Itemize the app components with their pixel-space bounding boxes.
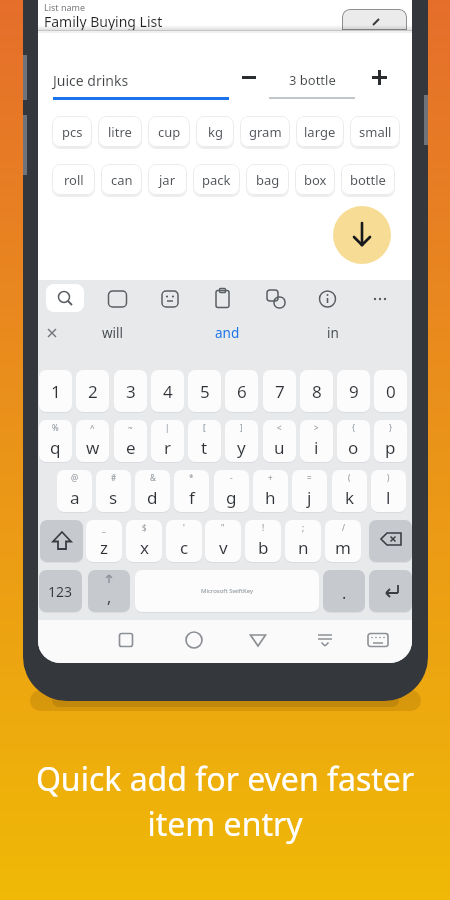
- button[interactable]: [102, 284, 132, 314]
- button[interactable]: [207, 284, 237, 314]
- button[interactable]: >: [300, 420, 333, 462]
- staticText: #: [111, 472, 117, 483]
- button[interactable]: 0: [374, 370, 407, 412]
- button[interactable]: {: [337, 420, 370, 462]
- button[interactable]: [342, 9, 407, 30]
- staticText: }: [389, 422, 393, 433]
- button[interactable]: _: [86, 520, 122, 562]
- button[interactable]: in: [293, 322, 373, 344]
- button[interactable]: [365, 284, 395, 314]
- button[interactable]: bag: [246, 164, 289, 195]
- staticText: 0: [386, 380, 396, 403]
- button[interactable]: }: [374, 420, 407, 462]
- staticText: k: [345, 486, 355, 509]
- button[interactable]: $: [126, 520, 162, 562]
- button[interactable]: ;: [285, 520, 321, 562]
- button[interactable]: <: [263, 420, 296, 462]
- button[interactable]: [365, 627, 391, 653]
- button[interactable]: [46, 284, 84, 312]
- button[interactable]: 7: [263, 370, 296, 412]
- button[interactable]: &: [135, 470, 170, 512]
- button[interactable]: jar: [148, 164, 187, 195]
- staticText: ': [183, 522, 185, 533]
- button[interactable]: 1: [39, 370, 72, 412]
- button[interactable]: [40, 520, 83, 562]
- button[interactable]: .: [323, 570, 365, 612]
- button[interactable]: litre: [98, 116, 142, 147]
- button[interactable]: Microsoft SwiftKey: [135, 570, 319, 612]
- button[interactable]: !: [245, 520, 281, 562]
- staticText: gram: [249, 123, 282, 141]
- staticText: %: [52, 422, 59, 433]
- button[interactable]: 8: [300, 370, 333, 412]
- button[interactable]: -: [214, 470, 249, 512]
- button[interactable]: [245, 627, 271, 653]
- button[interactable]: @: [57, 470, 92, 512]
- staticText: small: [359, 123, 392, 141]
- staticText: Microsoft SwiftKey: [201, 587, 253, 595]
- staticText: Juice drinks: [53, 71, 129, 90]
- staticText: u: [274, 436, 285, 459]
- button[interactable]: [312, 627, 338, 653]
- button[interactable]: /: [325, 520, 361, 562]
- button[interactable]: *: [174, 470, 209, 512]
- button[interactable]: ^: [76, 420, 109, 462]
- button[interactable]: cup: [148, 116, 190, 147]
- button[interactable]: small: [350, 116, 400, 147]
- button[interactable]: ~: [114, 420, 147, 462]
- button[interactable]: gram: [240, 116, 290, 147]
- button[interactable]: [369, 520, 412, 562]
- staticText: &: [150, 472, 156, 483]
- staticText: Family Buying List: [44, 12, 163, 31]
- button[interactable]: and: [187, 322, 267, 344]
- button[interactable]: can: [101, 164, 142, 195]
- button[interactable]: 123: [39, 570, 82, 612]
- button[interactable]: [260, 284, 290, 314]
- button[interactable]: 4: [151, 370, 184, 412]
- button[interactable]: 3: [114, 370, 147, 412]
- button[interactable]: 9: [337, 370, 370, 412]
- button[interactable]: #: [96, 470, 131, 512]
- staticText: 7: [275, 380, 285, 403]
- button[interactable]: will: [73, 322, 153, 344]
- button[interactable]: [155, 284, 185, 314]
- button[interactable]: [113, 627, 139, 653]
- button[interactable]: ]: [225, 420, 258, 462]
- button[interactable]: ": [205, 520, 241, 562]
- staticText: +: [268, 472, 273, 483]
- button[interactable]: pcs: [52, 116, 92, 147]
- button[interactable]: ): [371, 470, 406, 512]
- button[interactable]: 6: [225, 370, 258, 412]
- staticText: !: [262, 522, 265, 533]
- button[interactable]: ,: [88, 570, 130, 612]
- button[interactable]: box: [295, 164, 335, 195]
- button[interactable]: [234, 63, 264, 91]
- staticText: jar: [159, 171, 176, 189]
- button[interactable]: [333, 206, 391, 264]
- staticText: f: [189, 486, 195, 509]
- staticText: 1: [51, 380, 61, 403]
- button[interactable]: +: [253, 470, 288, 512]
- button[interactable]: %: [39, 420, 72, 462]
- button[interactable]: kg: [196, 116, 234, 147]
- button[interactable]: [312, 284, 342, 314]
- button[interactable]: =: [292, 470, 327, 512]
- button[interactable]: [364, 63, 394, 91]
- staticText: e: [126, 436, 136, 459]
- button[interactable]: 5: [188, 370, 221, 412]
- button[interactable]: ': [166, 520, 202, 562]
- staticText: ^: [90, 422, 95, 433]
- staticText: -: [230, 472, 233, 483]
- staticText: large: [304, 123, 336, 141]
- button[interactable]: 2: [76, 370, 109, 412]
- button[interactable]: pack: [193, 164, 240, 195]
- button[interactable]: [: [188, 420, 221, 462]
- button[interactable]: [181, 627, 207, 653]
- button[interactable]: (: [332, 470, 367, 512]
- button[interactable]: roll: [52, 164, 95, 195]
- button[interactable]: [369, 570, 412, 612]
- button[interactable]: large: [296, 116, 344, 147]
- button[interactable]: bottle: [341, 164, 395, 195]
- staticText: r: [164, 436, 172, 459]
- button[interactable]: |: [151, 420, 184, 462]
